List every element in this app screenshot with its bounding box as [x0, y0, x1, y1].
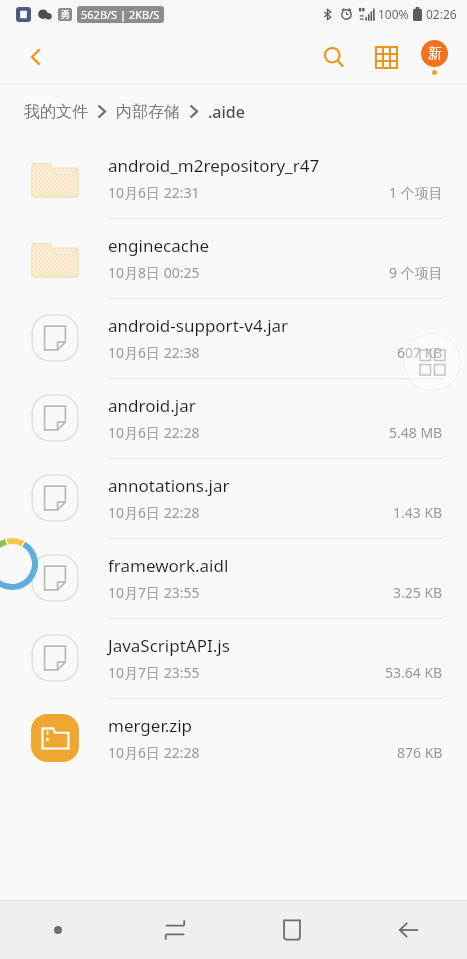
staticText: 10月6日 22:28 [108, 743, 200, 762]
staticText: 10月6日 22:28 [108, 503, 200, 522]
staticText: 876 KB [397, 743, 443, 762]
button[interactable]: Assistant [0, 901, 116, 959]
button[interactable]: enginecache [0, 218, 467, 298]
staticText: 607 KB [397, 343, 443, 362]
staticText: 9 个项目 [389, 263, 443, 282]
button[interactable]: 内部存储 [116, 102, 180, 122]
button[interactable]: Quick panel [403, 333, 461, 391]
button[interactable]: Recents [116, 901, 233, 959]
button[interactable]: View mode [363, 34, 409, 80]
staticText: 100% [378, 6, 409, 22]
staticText: 10月8日 00:25 [108, 263, 200, 282]
staticText: 10月6日 22:38 [108, 343, 200, 362]
staticText: 53.64 KB [385, 663, 443, 682]
button[interactable]: Back [350, 901, 467, 959]
staticText: 1.43 KB [393, 503, 443, 522]
button[interactable]: Home [233, 901, 350, 959]
button[interactable]: android_m2repository_r47 [0, 138, 467, 218]
staticText: framework.aidl [108, 554, 229, 577]
staticText: android.jar [108, 394, 196, 417]
button[interactable]: Storage [0, 538, 38, 590]
button[interactable]: android.jar [0, 378, 467, 458]
button[interactable]: framework.aidl [0, 538, 467, 618]
staticText: 10月6日 22:31 [108, 183, 200, 202]
staticText: 3.25 KB [393, 583, 443, 602]
button[interactable]: merger.zip [0, 698, 467, 778]
staticText: 1 个项目 [389, 183, 443, 202]
button[interactable]: Back [14, 35, 58, 79]
staticText: JavaScriptAPI.js [108, 634, 230, 657]
staticText: annotations.jar [108, 474, 230, 497]
staticText: android_m2repository_r47 [108, 154, 320, 177]
staticText: 02:26 [426, 6, 457, 22]
button[interactable]: android-support-v4.jar [0, 298, 467, 378]
staticText: android-support-v4.jar [108, 314, 289, 337]
button[interactable]: New [411, 34, 457, 80]
staticText: 10月7日 23:55 [108, 583, 200, 602]
button[interactable]: 我的文件 [24, 102, 88, 122]
staticText: 10月7日 23:55 [108, 663, 200, 682]
staticText: 新 [428, 45, 442, 63]
staticText: merger.zip [108, 714, 193, 737]
button[interactable]: .aide [208, 101, 245, 123]
staticText: enginecache [108, 234, 209, 257]
staticText: 勇 [60, 8, 70, 21]
staticText: 562B/S | 2KB/S [81, 7, 160, 22]
staticText: 5.48 MB [389, 423, 443, 442]
button[interactable]: JavaScriptAPI.js [0, 618, 467, 698]
button[interactable]: Search [311, 34, 357, 80]
button[interactable]: annotations.jar [0, 458, 467, 538]
staticText: 10月6日 22:28 [108, 423, 200, 442]
